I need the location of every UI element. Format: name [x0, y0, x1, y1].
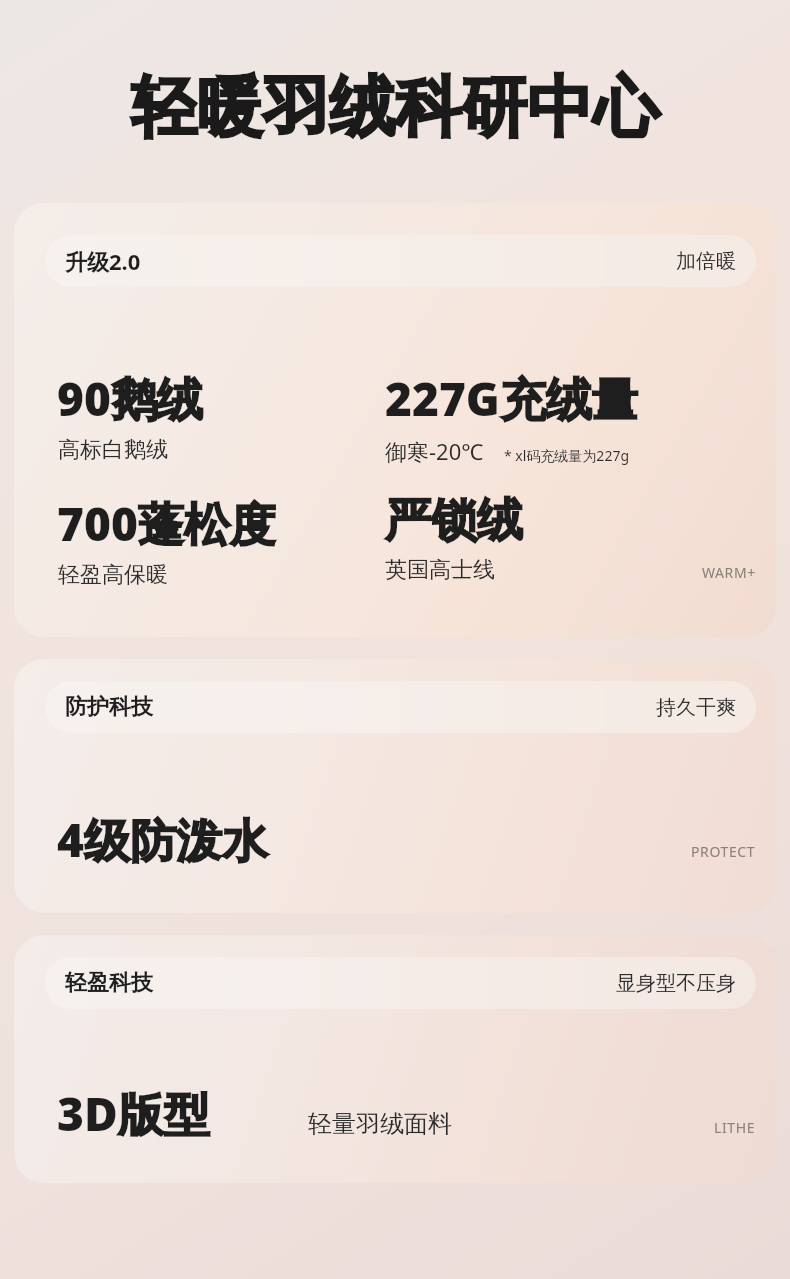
staticText: 轻量羽绒面料: [308, 1109, 452, 1139]
staticText: LITHE: [714, 1118, 756, 1137]
staticText: 3D版型: [57, 1082, 210, 1145]
button[interactable]: 升级2.0: [45, 235, 756, 287]
staticText: * xl码充绒量为227g: [504, 446, 630, 465]
staticText: 轻盈高保暖: [58, 561, 168, 589]
staticText: 显身型不压身: [616, 971, 736, 996]
staticText: WARM+: [702, 563, 756, 582]
staticText: 加倍暖: [676, 249, 736, 274]
staticText: 高标白鹅绒: [58, 436, 168, 464]
staticText: 轻盈科技: [65, 969, 153, 997]
staticText: 700蓬松度: [57, 492, 276, 555]
staticText: 英国高士线: [385, 556, 495, 584]
button[interactable]: 防护科技: [45, 681, 756, 733]
button[interactable]: 轻盈科技: [45, 957, 756, 1009]
staticText: 227G充绒量: [385, 367, 638, 430]
staticText: 4级防泼水: [57, 808, 268, 871]
button[interactable]: 防护科技: [14, 659, 776, 913]
button[interactable]: 轻盈科技: [14, 935, 776, 1183]
staticText: 轻暖羽绒科研中心: [131, 66, 659, 149]
staticText: 持久干爽: [656, 695, 736, 720]
staticText: 防护科技: [65, 693, 153, 721]
staticText: 严锁绒: [385, 492, 523, 550]
button[interactable]: 升级2.0: [14, 203, 776, 637]
staticText: 升级2.0: [65, 246, 141, 276]
staticText: 90鹅绒: [57, 367, 203, 430]
staticText: PROTECT: [691, 842, 756, 861]
staticText: 御寒-20℃: [385, 436, 484, 466]
